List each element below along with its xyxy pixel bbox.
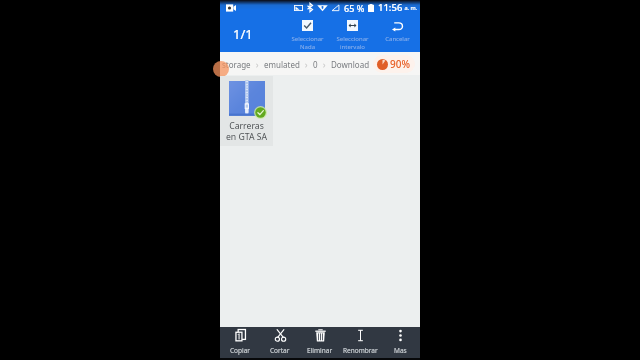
button[interactable]: Carreras en GTA SA: [220, 76, 273, 146]
staticText: Renombrar: [343, 346, 378, 355]
button[interactable]: Mas: [380, 327, 420, 358]
staticText: 11:56: [378, 1, 403, 14]
button[interactable]: Select range: [330, 15, 375, 52]
staticText: Cancelar: [385, 35, 410, 43]
staticText: ›: [256, 59, 259, 70]
staticText: ›: [305, 59, 308, 70]
staticText: Seleccionar intervalo: [336, 35, 369, 51]
button[interactable]: Eliminar: [300, 327, 340, 358]
staticText: 90%: [390, 57, 410, 71]
staticText: Mas: [394, 346, 407, 355]
button[interactable]: Select none: [284, 15, 330, 52]
button[interactable]: 90%: [377, 57, 410, 71]
staticText: Seleccionar Nada: [291, 35, 324, 51]
button[interactable]: Cortar: [260, 327, 300, 358]
button[interactable]: Copiar: [220, 327, 260, 358]
staticText: Cortar: [270, 346, 290, 355]
staticText: a. m.: [403, 4, 418, 11]
staticText: storage: [222, 59, 251, 70]
staticText: ›: [323, 59, 326, 70]
staticText: 1/1: [233, 25, 253, 43]
staticText: emulated: [264, 59, 300, 70]
button[interactable]: Renombrar: [340, 327, 380, 358]
staticText: Copiar: [230, 346, 251, 355]
staticText: Eliminar: [307, 346, 333, 355]
button[interactable]: 1/1: [220, 15, 284, 52]
staticText: 65 %: [344, 2, 365, 14]
staticText: 0: [313, 59, 318, 70]
button[interactable]: Cancel: [375, 15, 420, 52]
staticText: Download: [331, 59, 370, 70]
staticText: Carreras en GTA SA: [220, 120, 273, 143]
